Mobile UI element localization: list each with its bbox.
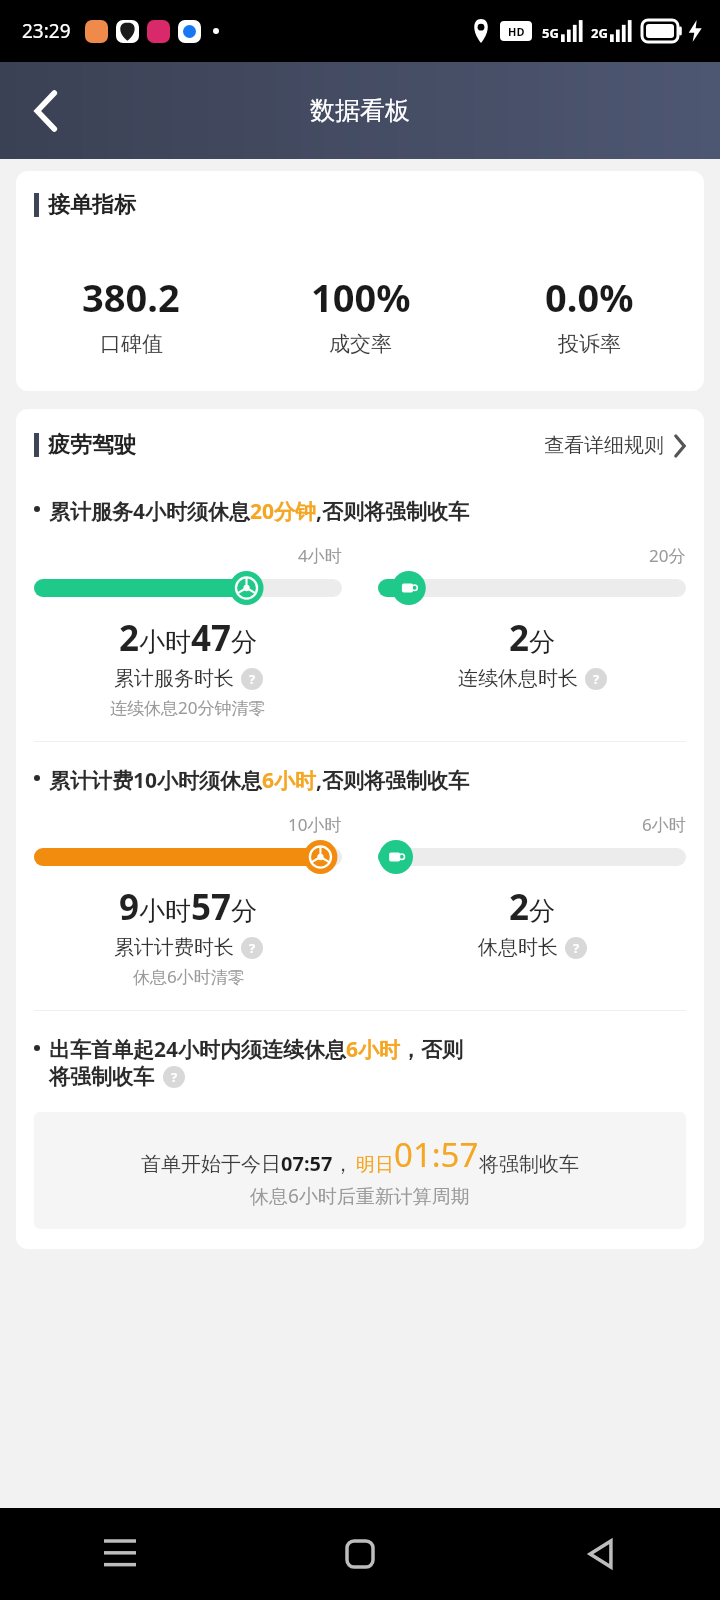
staticText: ? (249, 670, 256, 688)
staticText: 口碑值 (100, 331, 163, 357)
staticText: 23:29 (22, 18, 71, 44)
staticText: 接单指标 (48, 191, 136, 219)
button[interactable]: Back (18, 83, 74, 139)
staticText: 累计计费时长 (114, 935, 234, 960)
staticText: 2小时47分 (119, 614, 258, 662)
staticText: 将强制收车 (49, 1064, 154, 1090)
staticText: 380.2 (82, 271, 180, 323)
button[interactable]: 强制收车说明 (163, 1066, 185, 1088)
staticText: 查看详细规则 (544, 433, 664, 458)
staticText: 07:57 (281, 1150, 333, 1177)
staticText: 疲劳驾驶 (48, 431, 136, 459)
staticText: 成交率 (329, 331, 392, 357)
staticText: HD (508, 24, 525, 39)
staticText: 明日 (356, 1153, 394, 1177)
staticText: 4小时 (298, 544, 342, 567)
staticText: 6小时 (642, 813, 686, 836)
staticText: ? (573, 939, 580, 957)
staticText: 20分 (649, 544, 686, 567)
staticText: 01:57 (394, 1132, 479, 1177)
staticText: 休息时长 (478, 935, 558, 960)
staticText: 出车首单起24小时内须连续休息6小时，否则 (49, 1035, 464, 1064)
staticText: 100% (311, 271, 411, 323)
button[interactable]: 累计计费时长 说明 (241, 937, 263, 959)
button[interactable]: Back (480, 1508, 720, 1600)
button[interactable]: Recents (0, 1508, 240, 1600)
staticText: 2G (591, 24, 608, 42)
staticText: 休息6小时清零 (133, 965, 245, 988)
staticText: ， (333, 1152, 353, 1177)
staticText: ? (171, 1068, 178, 1086)
staticText: 5G (542, 24, 559, 42)
staticText: 累计计费10小时须休息6小时,否则将强制收车 (49, 766, 686, 795)
staticText: 投诉率 (558, 331, 621, 357)
staticText: 9小时57分 (119, 883, 258, 931)
staticText: 10小时 (288, 813, 342, 836)
staticText: ? (593, 670, 600, 688)
button[interactable]: 连续休息时长 说明 (585, 668, 607, 690)
staticText: 将强制收车 (479, 1152, 579, 1177)
staticText: 累计服务4小时须休息20分钟,否则将强制收车 (49, 497, 686, 526)
button[interactable]: 休息时长 说明 (565, 937, 587, 959)
staticText: ? (249, 939, 256, 957)
button[interactable]: Home (240, 1508, 480, 1600)
staticText: 2分 (509, 614, 556, 662)
staticText: 连续休息20分钟清零 (110, 696, 266, 719)
staticText: 累计服务时长 (114, 666, 234, 691)
staticText: 首单开始于今日 (141, 1152, 281, 1177)
staticText: 0.0% (545, 271, 634, 323)
staticText: 2分 (509, 883, 556, 931)
button[interactable]: 累计服务时长 说明 (241, 668, 263, 690)
staticText: 数据看板 (310, 95, 410, 126)
staticText: 连续休息时长 (458, 666, 578, 691)
button[interactable]: 查看详细规则 (544, 433, 686, 458)
staticText: 休息6小时后重新计算周期 (250, 1183, 470, 1209)
